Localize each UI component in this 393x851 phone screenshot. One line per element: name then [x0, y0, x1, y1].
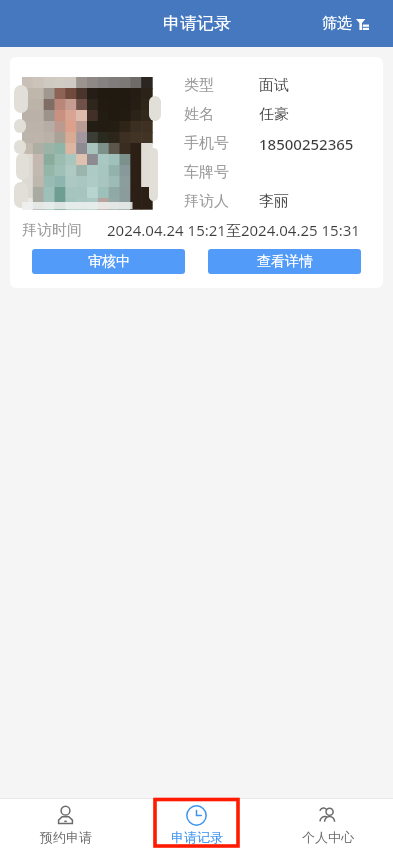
- staticText: 筛选: [322, 14, 352, 33]
- staticText: 面试: [259, 76, 289, 95]
- other: 筛选: [356, 17, 369, 30]
- button[interactable]: 预约申请: [0, 798, 131, 851]
- staticText: 任豪: [259, 105, 289, 124]
- staticText: 个人中心: [302, 829, 354, 845]
- staticText: 拜访人: [184, 192, 229, 211]
- staticText: 预约申请: [40, 829, 92, 845]
- staticText: 类型: [184, 76, 214, 95]
- staticText: 2024.04.24 15:21至2024.04.25 15:31: [107, 220, 360, 240]
- staticText: 申请记录: [163, 13, 231, 34]
- button[interactable]: 申请记录: [131, 798, 262, 851]
- staticText: 审核中: [88, 253, 130, 271]
- button[interactable]: 筛选: [322, 14, 369, 33]
- button[interactable]: 查看详情: [208, 249, 361, 274]
- staticText: 李丽: [259, 192, 289, 211]
- staticText: 姓名: [184, 105, 214, 124]
- staticText: 手机号: [184, 134, 229, 153]
- staticText: 车牌号: [184, 163, 229, 182]
- staticText: 申请记录: [171, 829, 223, 845]
- button[interactable]: 审核中: [32, 249, 185, 274]
- button[interactable]: 个人中心: [262, 798, 393, 851]
- staticText: 拜访时间: [22, 221, 82, 240]
- staticText: 查看详情: [257, 253, 313, 271]
- staticText: 18500252365: [259, 134, 354, 154]
